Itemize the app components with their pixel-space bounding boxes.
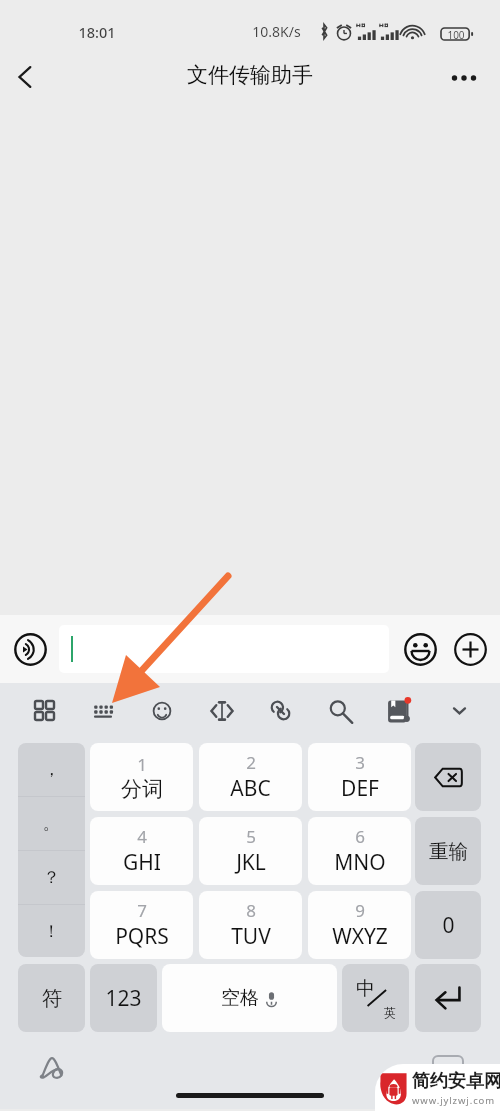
button[interactable]: 8 [199,891,302,959]
staticText: 4 [137,825,147,848]
button[interactable]: 中 [342,964,409,1032]
button[interactable]: 3 [308,743,411,811]
button[interactable]: ？ [18,851,85,904]
button[interactable]: Enter [415,964,481,1032]
button[interactable]: Emoji [140,690,184,731]
staticText: 2 [246,751,256,774]
staticText: 分词 [121,776,163,802]
staticText: WXYZ [332,922,388,951]
staticText: 100 [447,28,465,40]
button[interactable]: Search [318,690,362,731]
staticText: 。 [43,813,60,834]
staticText: 3 [355,751,365,774]
button[interactable]: Dictionary [377,690,421,731]
button[interactable]: 符 [18,964,85,1032]
button[interactable]: Back [3,55,47,99]
button[interactable]: 。 [18,797,85,850]
staticText: 符 [42,986,62,1011]
button[interactable]: 7 [90,891,193,959]
button[interactable]: Backspace [415,743,481,811]
button[interactable]: 重输 [415,817,481,885]
button[interactable]: Cursor [200,690,244,731]
button[interactable]: Emoji [402,631,438,667]
staticText: 5 [246,825,256,848]
button[interactable]: 4 [90,817,193,885]
button[interactable]: More options [442,56,486,100]
button[interactable]: 2 [199,743,302,811]
staticText: DEF [341,774,379,803]
button[interactable]: Clipboard [258,690,302,731]
staticText: 1 [137,753,147,776]
button[interactable]: Hide keyboard [437,690,481,731]
button[interactable] [59,625,389,673]
staticText: MNO [334,848,386,877]
button[interactable]: Keyboard [81,690,125,731]
staticText: 8 [246,899,256,922]
button[interactable]: 9 [308,891,411,959]
staticText: 9 [355,899,365,922]
staticText: 中 [356,977,375,1001]
staticText: ？ [43,867,60,888]
staticText: PQRS [115,922,169,951]
staticText: 英 [384,1005,396,1020]
staticText: www.jylzwj.com [412,1094,496,1107]
staticText: TUV [231,922,271,951]
staticText: ABC [230,774,271,803]
button[interactable]: 123 [90,964,157,1032]
staticText: ， [43,759,60,780]
staticText: 18:01 [78,22,116,42]
staticText: 重输 [429,839,468,864]
button[interactable]: 空格 [162,964,337,1032]
button[interactable]: ！ [18,905,85,957]
staticText: 文件传输助手 [187,62,313,88]
button[interactable]: 0 [415,891,481,959]
staticText: 10.8K/s [252,22,301,41]
staticText: 空格 [221,986,259,1010]
staticText: 0 [442,911,455,940]
staticText: 123 [105,984,142,1013]
staticText: GHI [123,848,161,877]
button[interactable]: Voice input [12,631,48,667]
staticText: 7 [137,899,147,922]
button[interactable]: 5 [199,817,302,885]
button[interactable]: ， [18,743,85,796]
button[interactable] [33,1048,71,1086]
staticText: JKL [236,848,266,877]
button[interactable]: Keyboard layouts [22,690,66,731]
button[interactable]: 6 [308,817,411,885]
staticText: 6 [355,825,365,848]
staticText: 简约安卓网 [412,1070,500,1093]
button[interactable]: More functions [452,631,488,667]
button[interactable]: 1 [90,743,193,811]
staticText: ！ [43,921,60,942]
